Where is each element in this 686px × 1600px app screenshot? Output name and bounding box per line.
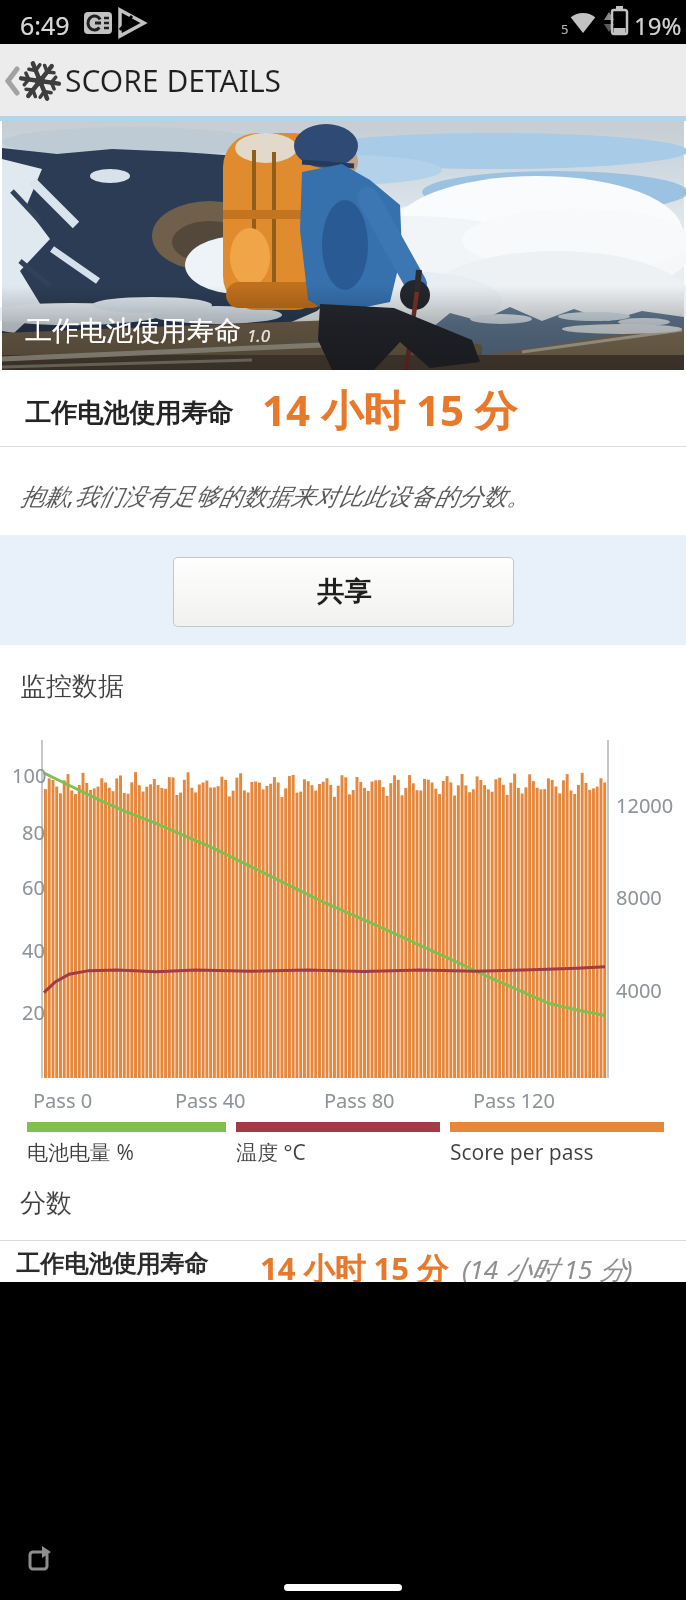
- button[interactable]: SCORE DETAILS: [0, 44, 686, 116]
- staticText: 监控数据: [20, 670, 124, 703]
- staticText: (14 小时 15 分): [462, 1251, 633, 1282]
- staticText: 14 小时 15 分: [260, 1247, 449, 1282]
- staticText: 12000: [616, 792, 674, 819]
- staticText: Pass 40: [175, 1087, 246, 1114]
- staticText: 1.0: [247, 324, 271, 347]
- staticText: 电池电量 %: [27, 1138, 134, 1167]
- staticText: 温度 °C: [236, 1138, 306, 1167]
- staticText: 5: [561, 20, 569, 38]
- staticText: 20: [22, 999, 45, 1026]
- staticText: 14 小时 15 分: [262, 381, 517, 438]
- staticText: 6:49: [20, 8, 70, 42]
- staticText: 工作电池使用寿命: [16, 1249, 208, 1279]
- button[interactable]: 工作电池使用寿命: [0, 1241, 686, 1282]
- staticText: SCORE DETAILS: [65, 60, 282, 101]
- staticText: Score per pass: [450, 1138, 594, 1167]
- staticText: Pass 0: [33, 1087, 93, 1114]
- staticText: 工作电池使用寿命: [25, 397, 233, 430]
- staticText: 共享: [317, 575, 371, 609]
- staticText: 分数: [20, 1187, 72, 1220]
- staticText: 19%: [634, 9, 682, 42]
- staticText: 抱歉,我们没有足够的数据来对比此设备的分数。: [20, 479, 531, 512]
- staticText: Pass 80: [324, 1087, 395, 1114]
- staticText: 60: [22, 874, 45, 901]
- staticText: 8000: [616, 884, 662, 911]
- staticText: 80: [22, 819, 45, 846]
- staticText: 100: [12, 762, 47, 789]
- staticText: 40: [22, 937, 45, 964]
- staticText: Pass 120: [473, 1087, 555, 1114]
- staticText: 4000: [616, 977, 662, 1004]
- button[interactable]: 共享: [174, 558, 513, 626]
- staticText: 工作电池使用寿命: [25, 314, 241, 348]
